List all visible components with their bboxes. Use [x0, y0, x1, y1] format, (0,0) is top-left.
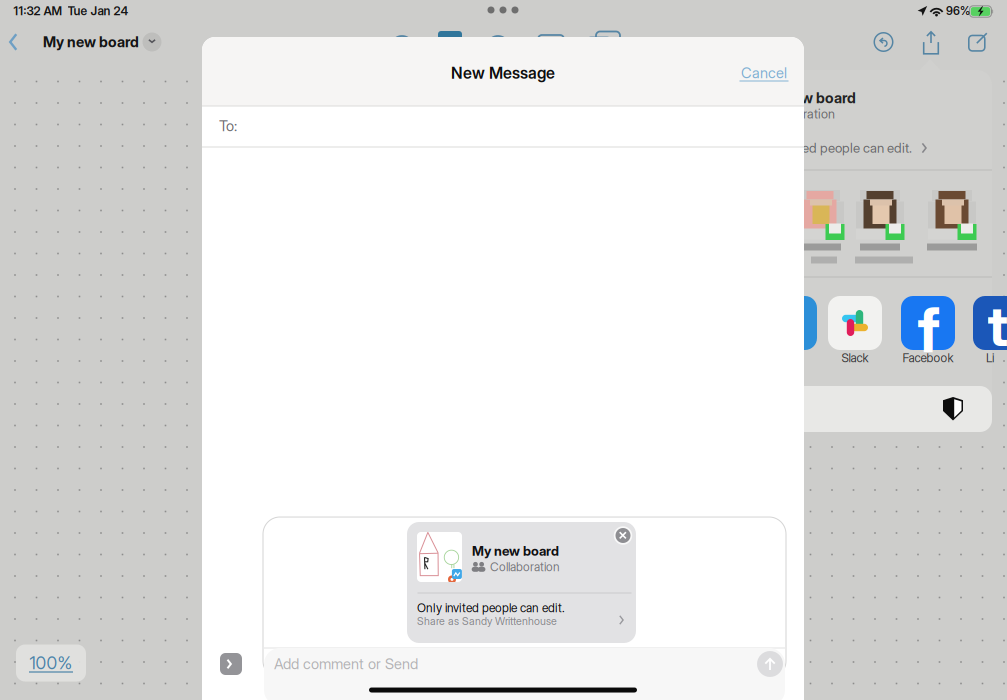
button[interactable]: Apps — [216, 649, 246, 679]
staticText: Tue Jan 24 — [67, 4, 128, 18]
button[interactable]: Board options — [138, 28, 166, 56]
staticText: To: — [219, 117, 237, 135]
staticText: 11:32 AM — [13, 4, 62, 18]
staticText: Collaboration — [760, 106, 835, 122]
staticText: f — [917, 293, 940, 367]
button[interactable]: Share — [915, 26, 947, 58]
staticText: New Message — [451, 63, 555, 83]
staticText: Collaboration — [490, 560, 560, 574]
staticText: Cancel — [741, 64, 787, 82]
staticText: Only invited people can edit. — [748, 140, 912, 156]
staticText: My new board — [760, 89, 856, 107]
staticText: Only invited people can edit. — [417, 601, 565, 615]
button[interactable]: Compose — [962, 26, 994, 58]
staticText: Facebook — [902, 351, 953, 365]
button[interactable]: Undo — [867, 26, 899, 58]
button[interactable]: Cancel — [730, 56, 798, 90]
staticText: t — [987, 292, 1007, 360]
button[interactable]: Remove attachment — [610, 522, 636, 548]
staticText: Share as Sandy Writtenhouse — [417, 614, 557, 627]
button[interactable]: Send — [753, 647, 787, 681]
staticText: Slack — [841, 351, 868, 365]
staticText: 96% — [946, 4, 970, 18]
staticText: My new board — [43, 33, 139, 51]
staticText: Li — [986, 351, 994, 365]
button[interactable]: Back — [2, 24, 34, 60]
staticText: Add comment or Send — [274, 655, 418, 673]
staticText: My new board — [472, 543, 559, 559]
button[interactable]: 100% — [11, 640, 91, 686]
staticText: 100% — [29, 652, 72, 673]
